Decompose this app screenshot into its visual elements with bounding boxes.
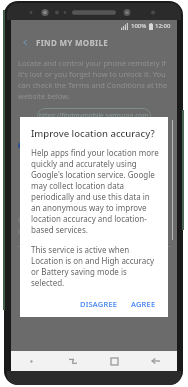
staticText: FIND MY MOBILE	[36, 37, 109, 48]
staticText: DISAGREE	[80, 299, 118, 309]
button[interactable]: Menu	[11, 351, 52, 371]
staticText: 100%	[131, 22, 147, 30]
staticText: AGREE	[131, 299, 156, 309]
button[interactable]: DISAGREE	[77, 296, 121, 312]
staticText: Locate and control your phone remotely i…	[18, 58, 170, 101]
button[interactable]: https://findmymobile.samsung.com	[37, 108, 151, 123]
staticText: Help apps find your location more quickl…	[31, 147, 159, 235]
staticText: https://findmymobile.samsung.com	[39, 111, 149, 120]
staticText: Remote controls	[34, 140, 88, 150]
staticText: Improve location accuracy?	[31, 127, 155, 140]
button[interactable]: Recents	[52, 351, 93, 371]
button[interactable]: Back	[17, 34, 33, 50]
button[interactable]: AGREE	[128, 296, 159, 312]
staticText: 12:00	[155, 22, 171, 30]
staticText: Find My Mobile server when the battery f…	[18, 216, 164, 236]
button[interactable]: Home	[93, 351, 135, 371]
button[interactable]: Back	[135, 351, 177, 371]
staticText: This service is active when Location is …	[31, 244, 159, 288]
